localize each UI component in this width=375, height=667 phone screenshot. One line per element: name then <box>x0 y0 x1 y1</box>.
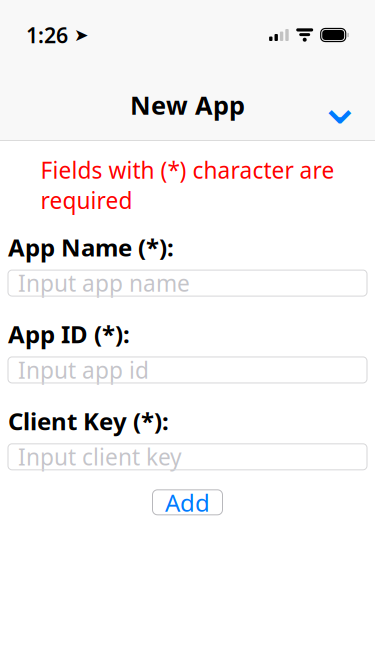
button[interactable]: Input app id <box>8 357 367 383</box>
staticText: Fields with (*) character are required <box>40 155 334 215</box>
button[interactable]: Collapse <box>313 81 367 129</box>
staticText: Input app id <box>18 355 149 385</box>
staticText: Input client key <box>18 442 182 472</box>
button[interactable]: Input client key <box>8 444 367 470</box>
staticText: Input app name <box>18 268 190 298</box>
staticText: App ID (*): <box>8 318 130 350</box>
staticText: Add <box>165 486 210 518</box>
button[interactable]: Input app name <box>8 270 367 296</box>
staticText: ⌄ <box>317 75 362 135</box>
staticText: Client Key (*): <box>8 405 169 437</box>
staticText: New App <box>130 88 245 122</box>
button[interactable]: Add <box>152 490 222 515</box>
staticText: 1:26 <box>26 21 68 49</box>
staticText: ➤ <box>68 25 89 45</box>
staticText: App Name (*): <box>8 231 174 263</box>
